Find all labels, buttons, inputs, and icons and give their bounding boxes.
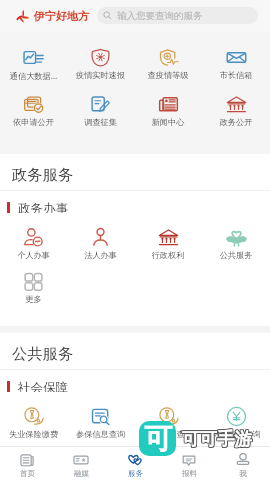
- other: Logo: [16, 9, 30, 23]
- staticText: 政务办事: [18, 201, 69, 213]
- button[interactable]: 融媒: [54, 447, 108, 480]
- button[interactable]: 失业保险缴费: [0, 406, 67, 439]
- button[interactable]: 新闻中心: [134, 94, 202, 127]
- staticText: 可可手游: [181, 428, 251, 450]
- staticText: 可可手游: [183, 427, 253, 449]
- staticText: 市长信箱: [202, 70, 270, 80]
- staticText: 政务公开: [202, 117, 270, 127]
- staticText: 参保信息查询: [67, 429, 134, 439]
- button[interactable]: 公共服务: [202, 227, 270, 260]
- button[interactable]: 疫情实时速报: [67, 47, 134, 80]
- button[interactable]: 首页: [0, 447, 54, 480]
- button[interactable]: 我: [216, 447, 270, 480]
- staticText: 可可手游: [183, 429, 253, 451]
- staticText: 疫情实时速报: [67, 70, 134, 80]
- staticText: 行政权利: [134, 250, 202, 260]
- staticText: 服务: [128, 469, 143, 478]
- button[interactable]: 法人办事: [67, 227, 134, 260]
- button[interactable]: 调查征集: [67, 94, 134, 127]
- staticText: 伊宁好地方: [34, 9, 89, 23]
- staticText: 公共服务: [202, 250, 270, 260]
- staticText: 失业保险缴费: [0, 429, 67, 439]
- button[interactable]: 依申请公开: [0, 94, 67, 127]
- staticText: 可可手游: [181, 429, 251, 451]
- staticText: 可: [144, 421, 172, 456]
- staticText: 可可手游: [183, 428, 253, 450]
- button[interactable]: 报料: [162, 447, 216, 480]
- staticText: 通信大数据…: [0, 70, 67, 81]
- staticText: 可可手游: [182, 427, 252, 449]
- staticText: 政务服务: [12, 165, 74, 184]
- button[interactable]: 更多: [0, 271, 67, 304]
- staticText: 依申请公开: [0, 117, 67, 127]
- staticText: 查疫情等级: [134, 70, 202, 80]
- staticText: 我: [239, 469, 247, 478]
- staticText: 社会保障: [18, 380, 69, 392]
- button[interactable]: 行政权利: [134, 227, 202, 260]
- staticText: 首页: [20, 469, 35, 478]
- staticText: 新闻中心: [134, 117, 202, 127]
- staticText: 调查征集: [67, 117, 134, 127]
- button[interactable]: 个人办事: [0, 227, 67, 260]
- button[interactable]: 市长信箱: [202, 47, 270, 80]
- staticText: 可可手游: [181, 427, 251, 449]
- button[interactable]: 输入您要查询的服务: [97, 7, 258, 24]
- staticText: 融媒: [74, 469, 89, 478]
- button[interactable]: 保险费率查询: [134, 406, 202, 439]
- button[interactable]: 通信大数据…: [0, 47, 67, 81]
- button[interactable]: 查疫情等级: [134, 47, 202, 80]
- button[interactable]: 政务公开: [202, 94, 270, 127]
- button[interactable]: 待遇资格查询: [202, 406, 270, 439]
- staticText: 可可手游: [182, 428, 252, 450]
- staticText: 待遇资格查询: [202, 429, 270, 439]
- staticText: 法人办事: [67, 250, 134, 260]
- staticText: 公共服务: [12, 344, 74, 363]
- staticText: 输入您要查询的服务: [117, 10, 203, 22]
- button[interactable]: 服务: [108, 447, 162, 480]
- staticText: 报料: [182, 469, 197, 478]
- button[interactable]: 参保信息查询: [67, 406, 134, 439]
- staticText: 个人办事: [0, 250, 67, 260]
- staticText: 保险费率查询: [134, 429, 202, 439]
- staticText: 可可手游: [182, 429, 252, 451]
- staticText: 更多: [0, 294, 67, 304]
